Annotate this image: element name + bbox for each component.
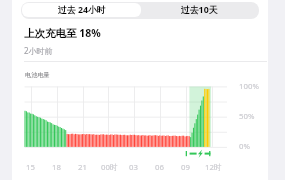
staticText: 0% xyxy=(239,141,250,152)
staticText: 21 xyxy=(78,162,87,173)
staticText: 100% xyxy=(239,81,259,92)
staticText: 03 xyxy=(129,162,138,173)
staticText: 上次充电至 18% xyxy=(24,26,101,40)
staticText: 15 xyxy=(26,162,35,173)
staticText: 过去10天 xyxy=(181,4,218,16)
staticText: 00时 xyxy=(101,162,118,173)
staticText: 电池电量 xyxy=(25,71,50,79)
staticText: 06 xyxy=(155,162,164,173)
staticText: 过去 24小时 xyxy=(58,4,106,16)
button[interactable]: 过去 24小时 xyxy=(22,3,141,17)
button[interactable]: 过去10天 xyxy=(141,3,258,17)
staticText: 2小时前 xyxy=(24,45,53,56)
staticText: 50% xyxy=(239,111,255,122)
staticText: 18 xyxy=(52,162,61,173)
staticText: 12时 xyxy=(205,162,222,173)
staticText: 09 xyxy=(181,162,190,173)
